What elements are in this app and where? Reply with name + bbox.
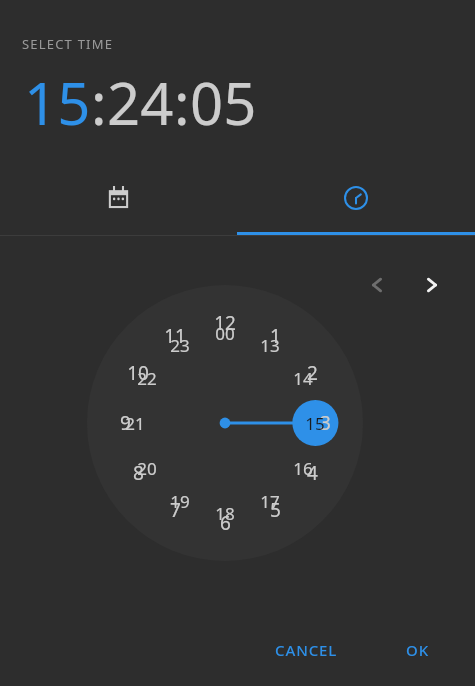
staticText: 13 [260,334,280,357]
button[interactable]: Next [413,266,451,304]
button[interactable]: 23 [160,325,200,365]
button[interactable]: 11 [155,316,195,356]
staticText: CANCEL [275,640,338,660]
button[interactable]: 21 [115,403,155,443]
button[interactable]: Previous [358,266,396,304]
staticText: 24 [107,63,174,142]
staticText: 16 [293,457,313,480]
staticText: 17 [260,490,280,513]
staticText: 11 [164,323,186,349]
button[interactable]: 18 [205,493,245,533]
staticText: 8 [133,460,144,486]
staticText: 12 [214,310,236,336]
staticText: : [91,63,107,142]
staticText: 15 [24,63,91,142]
staticText: 14 [293,367,313,390]
staticText: 22 [137,367,157,390]
staticText: 9 [120,410,131,436]
staticText: 15 [305,412,325,435]
staticText: 2 [307,360,318,386]
button[interactable]: 20 [127,448,167,488]
button[interactable]: 3 [305,403,345,443]
button[interactable]: 2 [292,353,332,393]
staticText: 21 [125,412,145,435]
button[interactable]: 15 [295,403,335,443]
button[interactable]: 4 [292,453,332,493]
button[interactable]: Select time [237,160,475,235]
button[interactable]: Select date [0,160,237,235]
staticText: 10 [127,360,149,386]
button[interactable]: 6 [205,503,245,543]
staticText: 00 [215,322,235,345]
staticText: 3 [320,410,331,436]
button[interactable]: 10 [118,353,158,393]
button[interactable]: 13 [250,325,290,365]
staticText: 1 [270,323,281,349]
staticText: 19 [170,490,190,513]
button[interactable]: 9 [105,403,145,443]
button[interactable]: 19 [160,481,200,521]
staticText: 7 [170,497,181,523]
button[interactable]: 00 [205,313,245,353]
staticText: 6 [220,510,231,536]
staticText: SELECT TIME [22,35,114,53]
button[interactable]: 7 [155,490,195,530]
button[interactable]: 24 [107,63,174,142]
button[interactable]: CANCEL [263,630,350,670]
staticText: 20 [137,457,157,480]
staticText: OK [406,640,430,660]
button[interactable]: 16 [283,448,323,488]
button[interactable]: 05 [190,63,257,142]
button[interactable]: 5 [255,490,295,530]
staticText: 18 [215,502,235,525]
staticText: 5 [270,497,281,523]
button[interactable]: OK [394,630,442,670]
button[interactable]: 14 [283,358,323,398]
staticText: 4 [307,460,318,486]
button[interactable]: 8 [118,453,158,493]
button[interactable]: 22 [127,358,167,398]
staticText: 05 [190,63,257,142]
button[interactable]: 12 [205,303,245,343]
button[interactable]: 1 [255,316,295,356]
button[interactable]: 17 [250,481,290,521]
staticText: : [174,63,190,142]
staticText: 23 [170,334,190,357]
button[interactable]: 15 [24,63,91,142]
